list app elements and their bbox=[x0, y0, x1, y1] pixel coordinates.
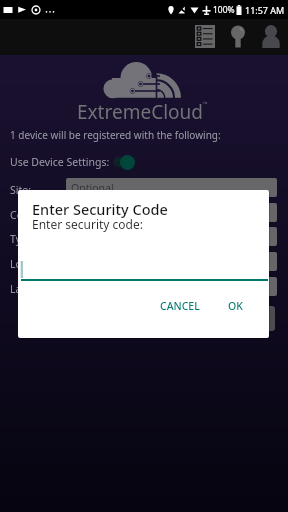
staticText: Site: bbox=[10, 183, 31, 197]
button[interactable] bbox=[66, 277, 277, 296]
staticText: CANCEL bbox=[160, 299, 200, 313]
button[interactable]: Optional bbox=[66, 178, 277, 197]
staticText: ™ bbox=[203, 100, 208, 108]
button[interactable]: Device list bbox=[189, 20, 221, 52]
staticText: Type: bbox=[10, 232, 37, 246]
staticText: 11:57 AM bbox=[245, 4, 285, 16]
button[interactable] bbox=[66, 227, 277, 246]
button[interactable] bbox=[66, 306, 275, 331]
button[interactable]: CANCEL bbox=[152, 294, 208, 318]
staticText: Use Device Settings: bbox=[10, 155, 110, 169]
button[interactable]: Account bbox=[255, 20, 287, 52]
button[interactable]: Search bbox=[222, 20, 254, 52]
staticText: Enter Security Code bbox=[32, 199, 168, 219]
staticText: 100% bbox=[213, 4, 235, 16]
staticText: 1 device will be registered with the fol… bbox=[10, 128, 221, 142]
staticText: Optional bbox=[71, 181, 114, 195]
button[interactable] bbox=[66, 203, 277, 222]
button[interactable] bbox=[66, 252, 277, 271]
staticText: Location: bbox=[10, 257, 55, 271]
staticText: Enter security code: bbox=[32, 216, 143, 232]
button[interactable]: Use Device Settings toggle bbox=[10, 152, 137, 172]
button[interactable]: OK bbox=[220, 294, 251, 318]
staticText: OK bbox=[228, 299, 243, 313]
staticText: ExtremeCloud bbox=[77, 99, 203, 125]
staticText: Configuration: bbox=[10, 208, 81, 222]
staticText: Label: bbox=[10, 282, 40, 296]
